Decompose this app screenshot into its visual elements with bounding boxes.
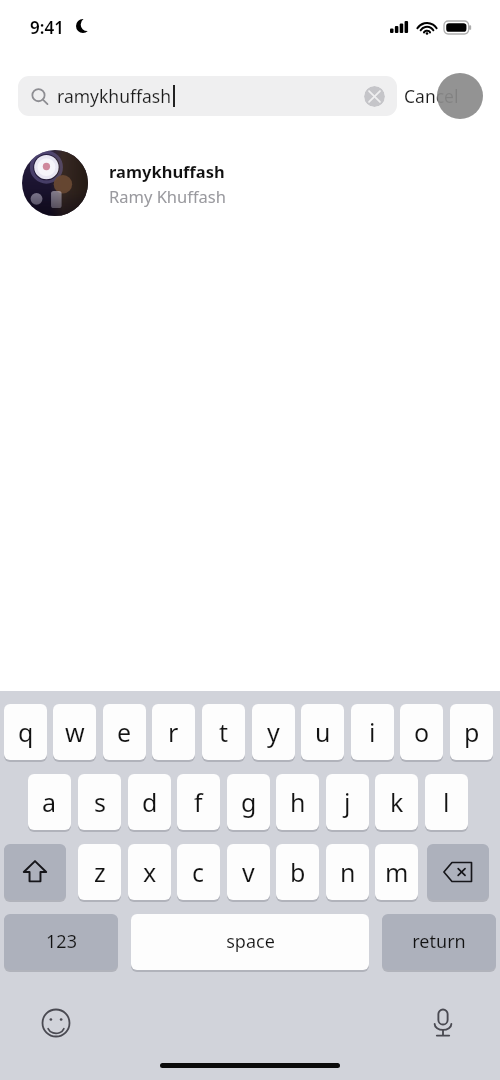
button[interactable]: l xyxy=(425,773,468,830)
button[interactable]: d xyxy=(128,773,171,830)
button[interactable]: j xyxy=(326,773,369,830)
staticText: v xyxy=(242,855,255,889)
button[interactable]: y xyxy=(252,703,295,760)
button[interactable]: p xyxy=(450,703,493,760)
staticText: g xyxy=(241,785,257,819)
button[interactable]: b xyxy=(276,843,319,900)
button[interactable]: k xyxy=(375,773,418,830)
button[interactable]: g xyxy=(227,773,270,830)
staticText: e xyxy=(117,715,132,749)
staticText: a xyxy=(42,785,57,819)
staticText: c xyxy=(192,855,205,889)
staticText: ramykhuffash xyxy=(57,84,172,108)
button[interactable]: Dictation xyxy=(420,1000,466,1046)
button[interactable]: z xyxy=(78,843,121,900)
button[interactable]: Clear text xyxy=(364,86,385,107)
button[interactable]: v xyxy=(227,843,270,900)
staticText: w xyxy=(65,715,85,749)
button[interactable]: Delete xyxy=(427,843,489,900)
staticText: z xyxy=(94,855,106,889)
staticText: h xyxy=(290,785,306,819)
staticText: Cancel xyxy=(404,84,459,108)
button[interactable]: Cancel xyxy=(404,78,459,114)
button[interactable]: f xyxy=(177,773,220,830)
button[interactable]: c xyxy=(177,843,220,900)
button[interactable]: t xyxy=(202,703,245,760)
button[interactable]: a xyxy=(28,773,71,830)
staticText: r xyxy=(168,715,179,749)
staticText: s xyxy=(94,785,106,819)
button[interactable]: u xyxy=(301,703,344,760)
staticText: q xyxy=(18,715,34,749)
staticText: ramykhuffash xyxy=(109,160,225,182)
staticText: j xyxy=(344,785,351,819)
button[interactable]: o xyxy=(400,703,443,760)
staticText: l xyxy=(443,785,450,819)
button[interactable]: n xyxy=(326,843,369,900)
staticText: t xyxy=(219,715,229,749)
button[interactable]: return xyxy=(382,913,496,970)
staticText: y xyxy=(267,715,280,749)
staticText: b xyxy=(290,855,306,889)
button[interactable]: space xyxy=(131,913,369,970)
button[interactable]: w xyxy=(53,703,96,760)
staticText: d xyxy=(142,785,158,819)
staticText: space xyxy=(226,929,275,954)
staticText: p xyxy=(464,715,480,749)
button[interactable]: ramykhuffash xyxy=(0,148,500,218)
staticText: m xyxy=(385,855,409,889)
staticText: n xyxy=(340,855,356,889)
button[interactable]: i xyxy=(351,703,394,760)
staticText: f xyxy=(194,785,203,819)
staticText: k xyxy=(390,785,404,819)
button[interactable]: ramykhuffash xyxy=(18,76,397,116)
staticText: i xyxy=(369,715,376,749)
button[interactable]: h xyxy=(276,773,319,830)
button[interactable]: r xyxy=(152,703,195,760)
button[interactable]: e xyxy=(103,703,146,760)
button[interactable]: q xyxy=(4,703,47,760)
staticText: o xyxy=(414,715,430,749)
staticText: return xyxy=(412,929,466,954)
staticText: x xyxy=(143,855,157,889)
staticText: 9:41 xyxy=(30,16,64,39)
staticText: Ramy Khuffash xyxy=(109,185,226,207)
staticText: 123 xyxy=(46,929,77,954)
button[interactable]: s xyxy=(78,773,121,830)
button[interactable]: Shift xyxy=(4,843,66,900)
button[interactable]: x xyxy=(128,843,171,900)
staticText: u xyxy=(315,715,331,749)
button[interactable]: 123 xyxy=(4,913,118,970)
button[interactable]: m xyxy=(375,843,418,900)
button[interactable]: Emoji keyboard xyxy=(33,1000,79,1046)
